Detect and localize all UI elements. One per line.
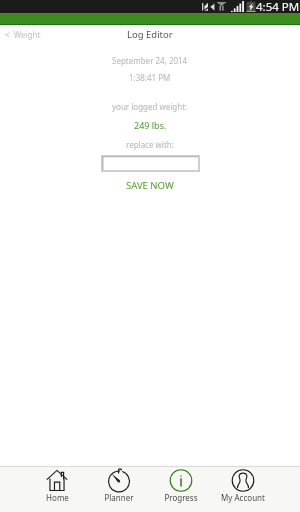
staticText: Progress (164, 492, 198, 503)
button[interactable]: SAVE NOW (120, 176, 180, 195)
button[interactable] (102, 156, 199, 171)
staticText: Planner (104, 492, 134, 503)
staticText: Log Editor (127, 28, 173, 41)
button[interactable]: < Weight (1, 27, 45, 42)
button[interactable]: Progress (150, 467, 212, 512)
staticText: Home (46, 492, 69, 503)
button[interactable]: Home (26, 467, 88, 512)
staticText: your logged weight: (112, 101, 188, 112)
staticText: 249 lbs. (134, 119, 167, 131)
staticText: < Weight (5, 29, 41, 40)
button[interactable]: My Account (212, 467, 274, 512)
staticText: September 24, 2014 (112, 55, 188, 66)
staticText: 1:38:41 PM (129, 72, 171, 83)
staticText: My Account (221, 492, 265, 503)
button[interactable]: Planner (88, 467, 150, 512)
staticText: replace with: (126, 139, 174, 150)
staticText: 4:54 PM (256, 0, 300, 12)
staticText: SAVE NOW (126, 179, 174, 192)
